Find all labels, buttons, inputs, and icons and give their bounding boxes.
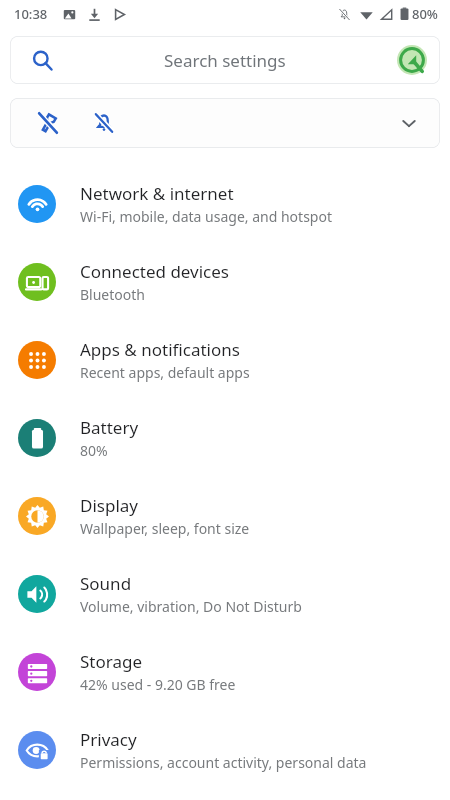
staticText: Network & internet	[80, 182, 234, 205]
other: Search	[32, 50, 53, 71]
button[interactable]: Sound	[0, 555, 450, 633]
button[interactable]: Do Not Disturb	[89, 108, 119, 138]
button[interactable]: Network & internet	[0, 165, 450, 243]
staticText: 10:38	[14, 5, 48, 23]
button[interactable]: Privacy	[0, 711, 450, 789]
button[interactable]: Flashlight off	[33, 108, 63, 138]
button[interactable]: Apps & notifications	[0, 321, 450, 399]
staticText: Privacy	[80, 728, 137, 751]
staticText: Connected devices	[80, 260, 230, 283]
staticText: Battery	[80, 416, 139, 439]
staticText: Wi-Fi, mobile, data usage, and hotspot	[80, 207, 332, 226]
staticText: Recent apps, default apps	[80, 363, 250, 382]
staticText: Sound	[80, 572, 132, 595]
staticText: Storage	[80, 650, 143, 673]
staticText: Search settings	[164, 49, 286, 72]
button[interactable]: Battery	[0, 399, 450, 477]
staticText: 80%	[412, 5, 438, 23]
button[interactable]: Flashlight off	[10, 98, 440, 148]
staticText: Permissions, account activity, personal …	[80, 753, 367, 772]
staticText: Display	[80, 494, 138, 517]
staticText: Volume, vibration, Do Not Disturb	[80, 597, 302, 616]
button[interactable]: Storage	[0, 633, 450, 711]
staticText: Apps & notifications	[80, 338, 240, 361]
button[interactable]: Expand	[396, 110, 422, 136]
staticText: 80%	[80, 441, 108, 460]
staticText: 42% used - 9.20 GB free	[80, 675, 236, 694]
button[interactable]: Search	[10, 36, 440, 84]
staticText: Wallpaper, sleep, font size	[80, 519, 250, 538]
staticText: Bluetooth	[80, 285, 145, 304]
button[interactable]: Connected devices	[0, 243, 450, 321]
button[interactable]: Assistant	[397, 45, 427, 75]
button[interactable]: Display	[0, 477, 450, 555]
